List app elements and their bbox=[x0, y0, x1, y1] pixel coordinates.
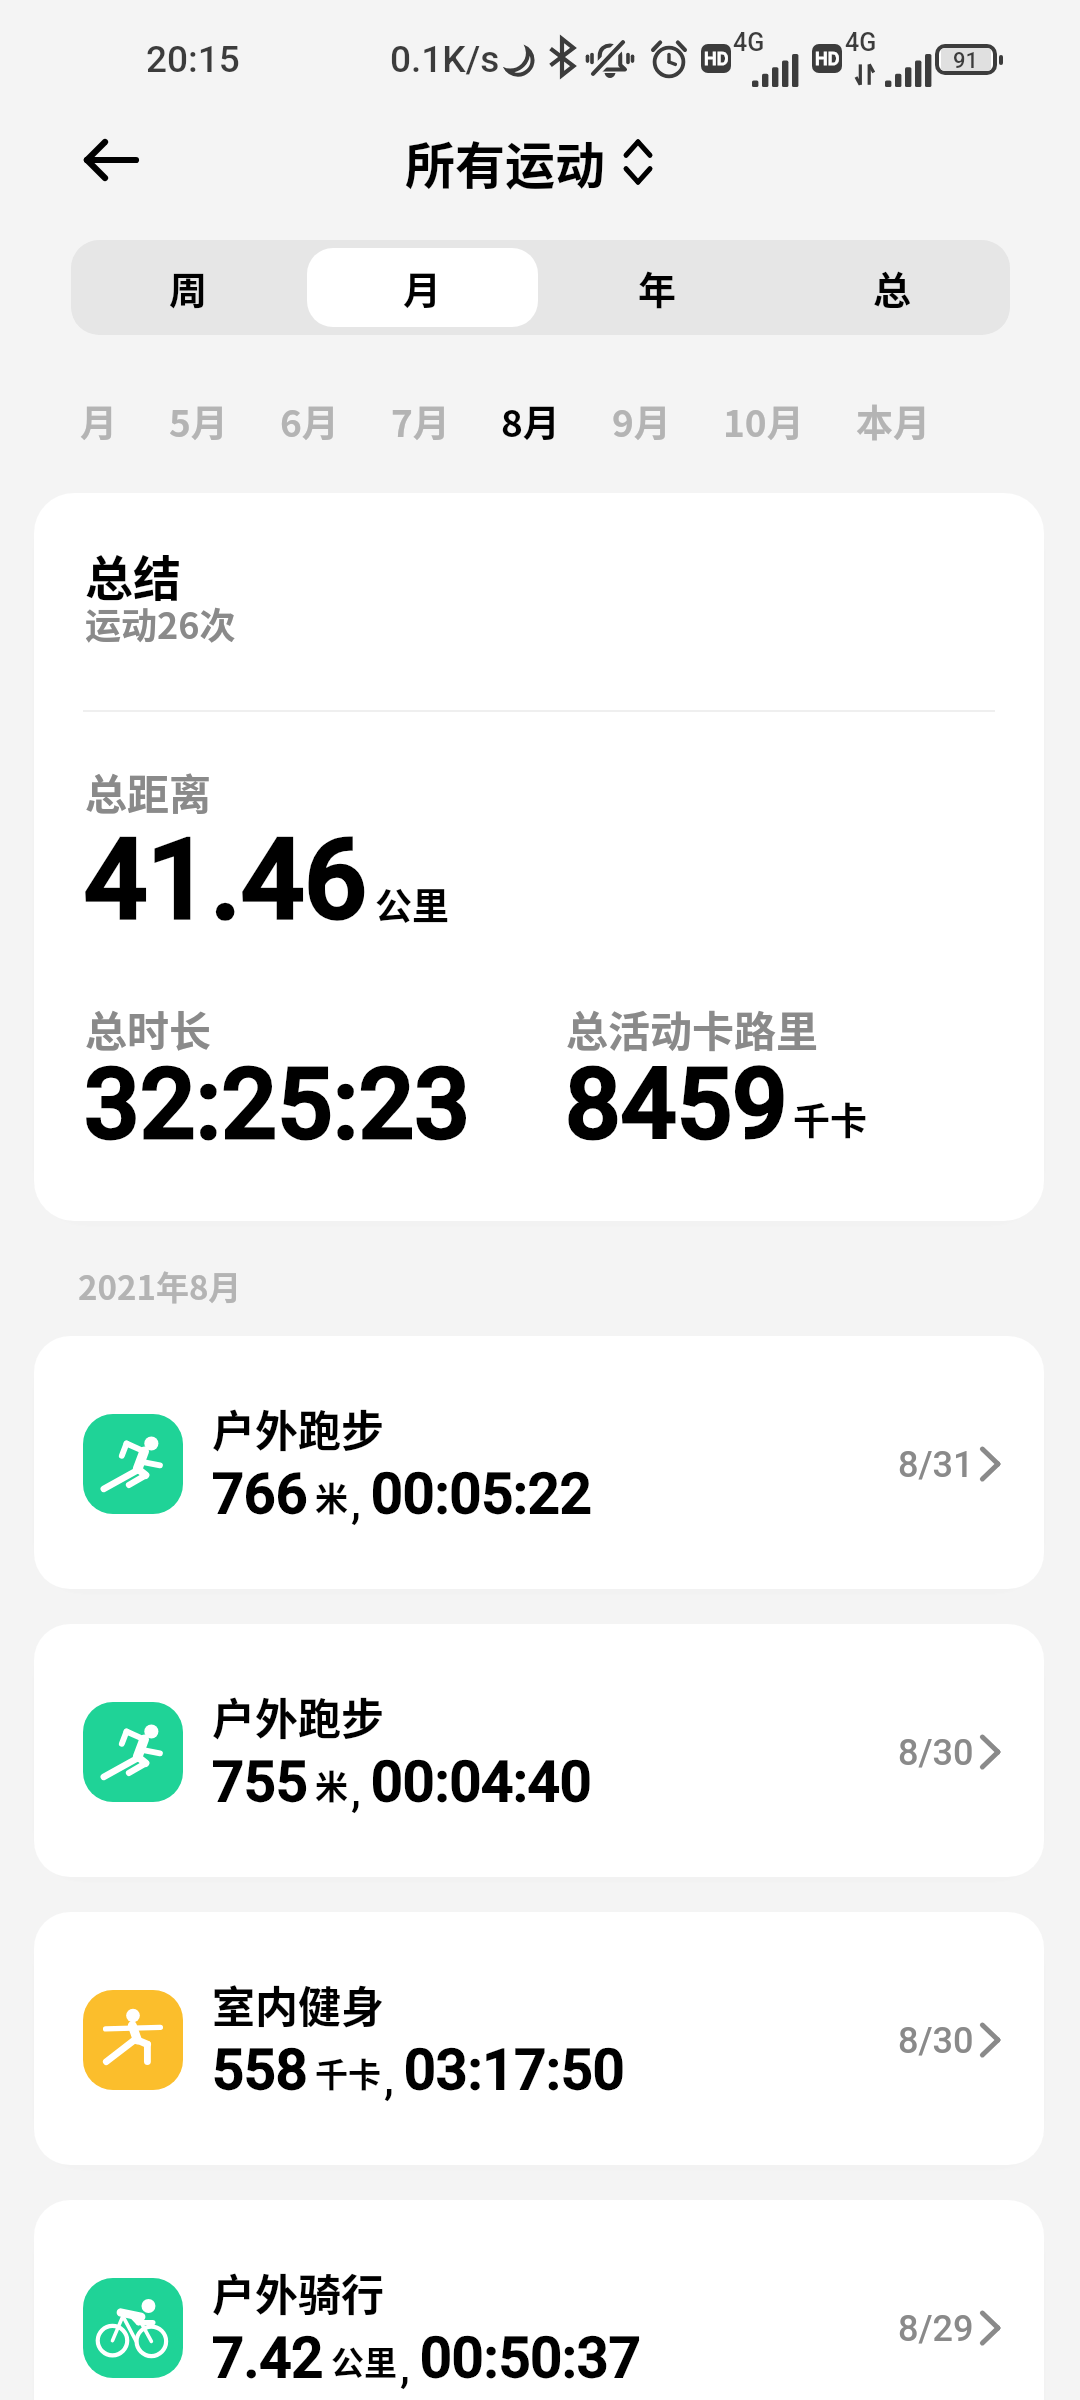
staticText: 7月 bbox=[391, 394, 450, 448]
button[interactable]: 月 bbox=[307, 248, 538, 327]
staticText: 月 bbox=[403, 260, 442, 315]
button[interactable]: 户外骑行 bbox=[34, 2200, 1044, 2400]
staticText: 月 bbox=[80, 394, 117, 448]
staticText: 0.1K/s bbox=[390, 38, 500, 81]
button[interactable]: 周 bbox=[73, 248, 303, 327]
staticText: 4G bbox=[845, 28, 877, 57]
staticText: , bbox=[384, 2053, 394, 2105]
button[interactable]: 户外跑步 bbox=[34, 1624, 1044, 1877]
staticText: 8459 bbox=[565, 1047, 788, 1162]
staticText: 8/31 bbox=[898, 1444, 974, 1486]
button[interactable]: 本月 bbox=[856, 380, 930, 462]
staticText: 8/30 bbox=[898, 1732, 974, 1774]
button[interactable]: 户外跑步 bbox=[34, 1336, 1044, 1589]
staticText: , bbox=[400, 2341, 410, 2393]
staticText: 周 bbox=[169, 260, 208, 315]
staticText: 00:04:40 bbox=[371, 1749, 592, 1815]
staticText: 8/29 bbox=[898, 2308, 974, 2350]
staticText: 558 bbox=[212, 2037, 308, 2103]
staticText: 7.42 bbox=[212, 2325, 324, 2391]
staticText: HD bbox=[704, 48, 729, 69]
staticText: 8/30 bbox=[898, 2020, 974, 2062]
staticText: 10月 bbox=[723, 394, 804, 448]
button[interactable]: Back bbox=[84, 124, 156, 196]
staticText: 米 bbox=[315, 1473, 348, 1521]
staticText: 32:25:23 bbox=[84, 1047, 470, 1162]
staticText: 年 bbox=[638, 260, 677, 315]
staticText: 总时长 bbox=[85, 998, 212, 1059]
staticText: 千卡 bbox=[315, 2049, 381, 2097]
button[interactable]: 总 bbox=[777, 248, 1008, 327]
button[interactable]: 6月 bbox=[280, 380, 339, 462]
staticText: 户外跑步 bbox=[212, 1397, 384, 1459]
staticText: 总结 bbox=[85, 540, 182, 610]
staticText: 03:17:50 bbox=[404, 2037, 625, 2103]
staticText: 总距离 bbox=[85, 761, 212, 822]
button[interactable]: 8月 bbox=[501, 380, 560, 462]
button[interactable]: 9月 bbox=[612, 380, 671, 462]
staticText: , bbox=[351, 1765, 361, 1817]
staticText: 公里 bbox=[331, 2337, 397, 2385]
staticText: 总活动卡路里 bbox=[566, 998, 819, 1059]
button[interactable]: 10月 bbox=[723, 380, 804, 462]
staticText: 运动26次 bbox=[85, 597, 236, 649]
staticText: 总 bbox=[873, 260, 912, 315]
button[interactable]: 所有运动 bbox=[405, 126, 651, 198]
staticText: 755 bbox=[212, 1749, 308, 1815]
staticText: 20:15 bbox=[146, 38, 240, 81]
staticText: 公里 bbox=[375, 877, 449, 931]
button[interactable]: 7月 bbox=[391, 380, 450, 462]
button[interactable]: 室内健身 bbox=[34, 1912, 1044, 2165]
button[interactable]: 总结 bbox=[34, 493, 1044, 1221]
staticText: 所有运动 bbox=[405, 126, 605, 198]
staticText: HD bbox=[815, 48, 840, 69]
staticText: 4G bbox=[733, 28, 765, 57]
staticText: 米 bbox=[315, 1761, 348, 1809]
staticText: 766 bbox=[212, 1461, 308, 1527]
staticText: 00:05:22 bbox=[371, 1461, 592, 1527]
staticText: 室内健身 bbox=[212, 1973, 384, 2035]
staticText: 41.46 bbox=[84, 815, 368, 945]
staticText: 8月 bbox=[501, 394, 560, 448]
staticText: 本月 bbox=[856, 394, 930, 448]
staticText: 户外跑步 bbox=[212, 1685, 384, 1747]
staticText: , bbox=[351, 1477, 361, 1529]
staticText: 2021年8月 bbox=[78, 1262, 242, 1310]
staticText: 6月 bbox=[280, 394, 339, 448]
button[interactable]: 年 bbox=[542, 248, 773, 327]
staticText: 户外骑行 bbox=[212, 2261, 384, 2323]
staticText: 千卡 bbox=[793, 1092, 867, 1146]
staticText: 9月 bbox=[612, 394, 671, 448]
staticText: 00:50:37 bbox=[420, 2325, 641, 2391]
staticText: 91 bbox=[953, 48, 979, 71]
button[interactable]: 5月 bbox=[169, 380, 228, 462]
staticText: 5月 bbox=[169, 394, 228, 448]
button[interactable]: 月 bbox=[80, 380, 117, 462]
